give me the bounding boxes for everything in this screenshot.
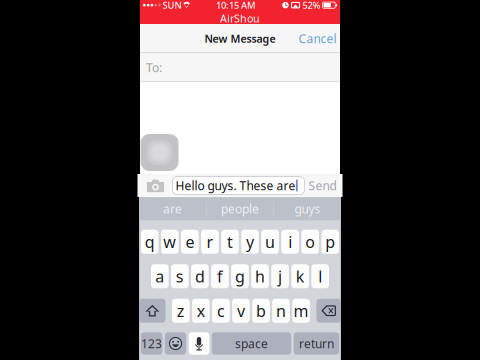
staticText: r bbox=[206, 231, 213, 252]
staticText: Cancel bbox=[298, 30, 336, 46]
button[interactable]: Delete bbox=[316, 299, 341, 323]
staticText: SUN bbox=[162, 0, 181, 11]
staticText: g bbox=[235, 266, 245, 287]
button[interactable]: n bbox=[272, 299, 290, 323]
staticText: y bbox=[246, 231, 254, 252]
staticText: m bbox=[294, 300, 309, 321]
staticText: p bbox=[325, 231, 335, 252]
button[interactable]: y bbox=[241, 230, 259, 254]
staticText: 10:15 AM bbox=[216, 0, 256, 11]
staticText: o bbox=[305, 231, 315, 252]
staticText: e bbox=[185, 231, 194, 252]
staticText: Hello guys. These are bbox=[175, 177, 295, 193]
button[interactable]: a bbox=[151, 264, 169, 288]
staticText: 123 bbox=[141, 335, 162, 351]
button[interactable]: t bbox=[221, 230, 239, 254]
staticText: q bbox=[145, 231, 155, 252]
button[interactable]: return bbox=[294, 332, 339, 355]
button[interactable]: b bbox=[252, 299, 270, 323]
staticText: j bbox=[278, 266, 282, 287]
button[interactable]: k bbox=[291, 264, 309, 288]
button[interactable]: v bbox=[232, 299, 250, 323]
button[interactable]: Cancel bbox=[293, 24, 340, 52]
button[interactable]: m bbox=[292, 299, 310, 323]
button[interactable]: 123 bbox=[141, 332, 162, 355]
staticText: w bbox=[163, 231, 176, 252]
button[interactable]: l bbox=[311, 264, 329, 288]
button[interactable]: w bbox=[161, 230, 179, 254]
staticText: space bbox=[235, 335, 268, 351]
staticText: n bbox=[276, 300, 286, 321]
staticText: d bbox=[195, 266, 205, 287]
staticText: t bbox=[227, 231, 233, 252]
staticText: l bbox=[318, 266, 322, 287]
button[interactable]: Take or choose photo bbox=[138, 174, 172, 196]
button[interactable]: Emoji bbox=[165, 332, 186, 355]
staticText: z bbox=[177, 300, 185, 321]
staticText: b bbox=[256, 300, 266, 321]
button[interactable]: are bbox=[139, 197, 206, 220]
staticText: u bbox=[265, 231, 275, 252]
button[interactable]: h bbox=[251, 264, 269, 288]
button[interactable]: p bbox=[321, 230, 339, 254]
staticText: 52% bbox=[303, 0, 321, 11]
staticText: are bbox=[163, 201, 182, 217]
button[interactable]: To: bbox=[140, 53, 340, 82]
button[interactable]: Shift bbox=[139, 299, 165, 323]
staticText: a bbox=[155, 266, 164, 287]
button[interactable]: u bbox=[261, 230, 279, 254]
button[interactable]: people bbox=[207, 197, 273, 220]
button[interactable]: space bbox=[212, 332, 291, 355]
staticText: people bbox=[221, 201, 259, 217]
staticText: c bbox=[217, 300, 225, 321]
staticText: AirShou bbox=[220, 11, 260, 25]
button[interactable]: g bbox=[231, 264, 249, 288]
button[interactable]: q bbox=[141, 230, 159, 254]
button[interactable]: o bbox=[301, 230, 319, 254]
button[interactable]: s bbox=[171, 264, 189, 288]
staticText: guys bbox=[294, 201, 320, 217]
staticText: Send bbox=[308, 177, 336, 193]
staticText: i bbox=[288, 231, 292, 252]
button[interactable]: Photo attachment bbox=[140, 134, 178, 171]
staticText: f bbox=[217, 266, 223, 287]
button[interactable]: z bbox=[172, 299, 190, 323]
button[interactable]: i bbox=[281, 230, 299, 254]
button[interactable]: r bbox=[201, 230, 219, 254]
button[interactable]: e bbox=[181, 230, 199, 254]
button[interactable]: d bbox=[191, 264, 209, 288]
staticText: v bbox=[237, 300, 245, 321]
staticText: To: bbox=[146, 59, 162, 75]
staticText: return bbox=[299, 335, 334, 351]
button[interactable]: x bbox=[192, 299, 210, 323]
staticText: k bbox=[296, 266, 305, 287]
staticText: x bbox=[197, 300, 205, 321]
button[interactable]: j bbox=[271, 264, 289, 288]
button[interactable]: c bbox=[212, 299, 230, 323]
button[interactable]: Dictation bbox=[189, 332, 209, 355]
button[interactable]: Send bbox=[304, 173, 340, 197]
staticText: New Message bbox=[204, 31, 275, 46]
button[interactable]: guys bbox=[274, 197, 341, 220]
staticText: h bbox=[255, 266, 265, 287]
staticText: s bbox=[176, 266, 184, 287]
button[interactable]: f bbox=[211, 264, 229, 288]
